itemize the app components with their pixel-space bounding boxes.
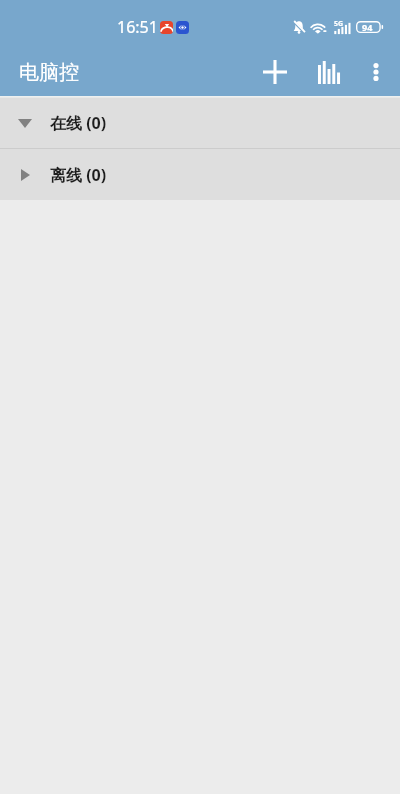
staticText: 离线 (0) (50, 164, 107, 186)
staticText: 电脑控 (19, 60, 79, 85)
staticText: 94 (362, 21, 373, 33)
staticText: 16:51 (117, 16, 158, 38)
staticText: 在线 (0) (50, 112, 107, 134)
button[interactable]: Add (251, 48, 299, 96)
button[interactable]: 离线 (0) (0, 149, 400, 200)
button[interactable]: Statistics (305, 48, 353, 96)
button[interactable]: More options (352, 48, 400, 96)
button[interactable]: 在线 (0) (0, 98, 400, 148)
staticText: 5G (334, 19, 344, 29)
